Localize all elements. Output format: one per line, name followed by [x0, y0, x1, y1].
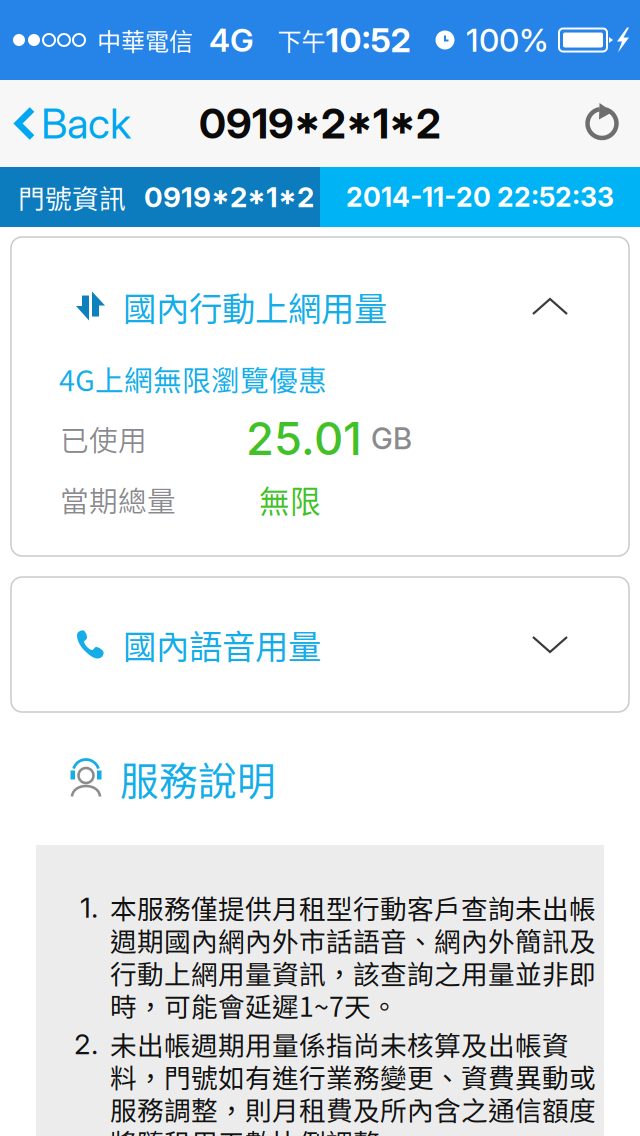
staticText: 1. — [80, 891, 98, 925]
staticText: 0919*2*1*2 — [144, 180, 314, 214]
staticText: GB — [371, 421, 412, 456]
staticText: 0919*2*1*2 — [199, 98, 441, 148]
staticText: 門號資訊 — [18, 178, 126, 216]
button[interactable]: Refresh — [564, 80, 640, 167]
staticText: 中華電信 — [97, 23, 193, 57]
staticText: 國內語音用量 — [123, 620, 321, 669]
staticText: 10:52 — [325, 20, 410, 60]
staticText: 當期總量 — [60, 479, 176, 520]
button[interactable]: Back — [0, 80, 141, 167]
staticText: 100% — [466, 21, 549, 59]
staticText: 本服務僅提供月租型行動客戶查詢未出帳週期國內網內外市話語音、網內外簡訊及行動上網… — [110, 888, 596, 1024]
staticText: 2014-11-20 22:52:33 — [346, 181, 614, 213]
staticText: 服務說明 — [120, 750, 276, 806]
staticText: 4G上網無限瀏覽優惠 — [59, 358, 327, 399]
staticText: 已使用 — [60, 418, 147, 459]
staticText: 國內行動上網用量 — [123, 282, 387, 331]
button[interactable]: 國內語音用量 — [11, 577, 629, 712]
staticText: 未出帳週期用量係指尚未核算及出帳資料，門號如有進行業務變更、資費異動或服務調整，… — [110, 1024, 596, 1136]
staticText: 2. — [74, 1027, 98, 1061]
staticText: 25.01 — [246, 411, 362, 466]
staticText: 無限 — [259, 477, 321, 522]
button[interactable]: 國內行動上網用量 — [11, 237, 629, 376]
staticText: Back — [41, 98, 131, 148]
staticText: 4G — [209, 21, 254, 59]
staticText: 下午 — [277, 23, 325, 57]
